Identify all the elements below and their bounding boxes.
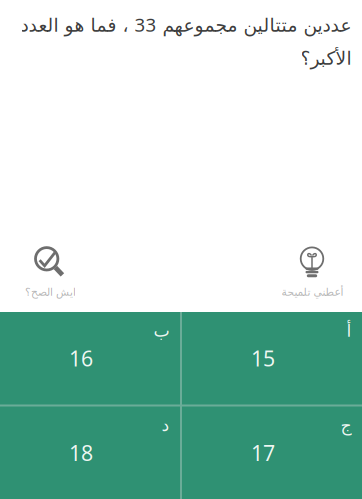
staticText: ايش الصح؟	[24, 286, 75, 298]
staticText: د	[161, 415, 169, 435]
button[interactable]: ايش الصح؟	[0, 246, 100, 298]
staticText: الأكبر؟	[300, 48, 351, 69]
staticText: أ	[346, 321, 351, 341]
button[interactable]: أ	[182, 312, 362, 404]
button[interactable]: د	[0, 406, 180, 499]
staticText: 18	[69, 439, 93, 467]
staticText: عددين متتالين مجموعهم 33 ، فما هو العدد	[20, 12, 351, 37]
staticText: 15	[251, 344, 275, 372]
staticText: ب	[153, 321, 169, 341]
button[interactable]: أعطني تلميحة	[262, 246, 362, 298]
staticText: 17	[251, 439, 275, 467]
staticText: أعطني تلميحة	[281, 286, 343, 298]
button[interactable]: ب	[0, 312, 180, 404]
staticText: ج	[340, 415, 351, 435]
staticText: 16	[69, 344, 93, 372]
button[interactable]: ج	[182, 406, 362, 499]
